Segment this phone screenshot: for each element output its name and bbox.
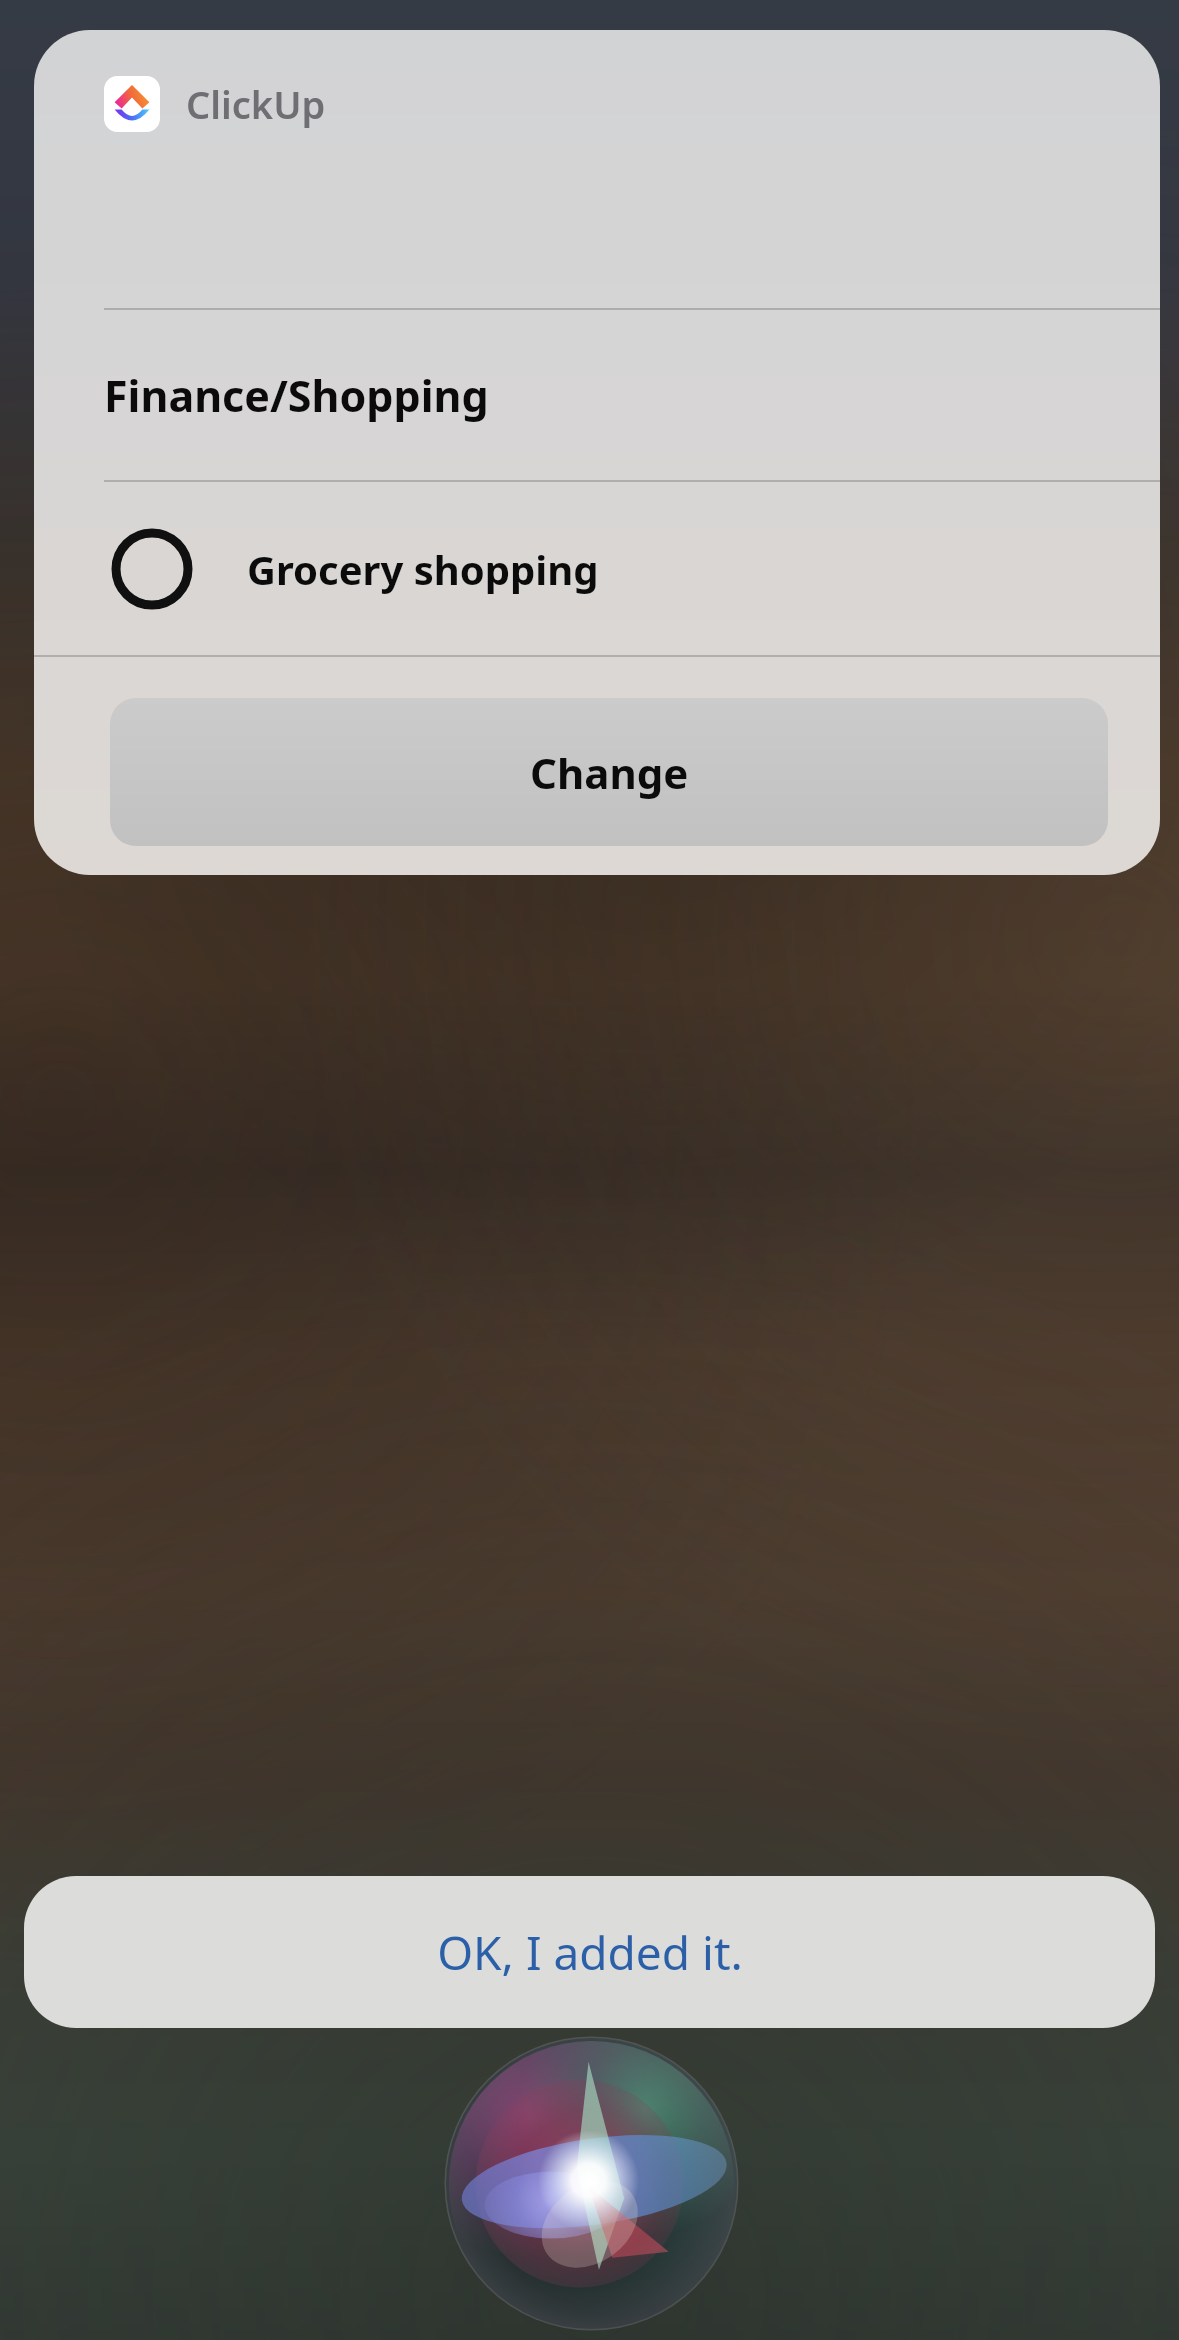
staticText: ClickUp — [186, 78, 326, 130]
staticText: Grocery shopping — [247, 542, 599, 596]
staticText: Finance/Shopping — [104, 366, 489, 425]
button[interactable]: Change — [110, 698, 1108, 846]
button[interactable]: ClickUp — [34, 30, 1160, 875]
staticText: Change — [530, 744, 689, 801]
button[interactable]: Siri — [443, 2035, 740, 2332]
button[interactable]: OK, I added it. — [24, 1876, 1155, 2028]
button[interactable]: Finance/Shopping — [34, 310, 1160, 480]
staticText: OK, I added it. — [437, 1921, 743, 1984]
button[interactable]: Grocery shopping — [34, 482, 1160, 655]
